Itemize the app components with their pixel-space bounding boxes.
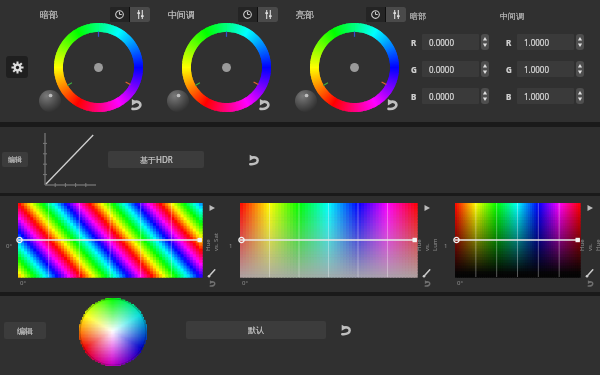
button[interactable]: Reset Hue vs. Hue <box>585 278 596 289</box>
button[interactable]: Color wheel 暗部 <box>54 23 143 112</box>
button[interactable] <box>238 7 278 22</box>
button[interactable]: Expand Hue vs. Sat <box>207 203 217 213</box>
button[interactable]: Undo <box>246 152 262 168</box>
staticText: 0.0000 <box>429 64 455 75</box>
button[interactable]: Stepper G <box>481 61 489 77</box>
button[interactable]: Picker Hue vs. Hue <box>585 268 595 278</box>
staticText: 默认 <box>248 325 264 335</box>
staticText: B <box>506 91 512 102</box>
staticText: 0° <box>457 279 464 287</box>
staticText: Hue vs. Lum <box>415 231 439 251</box>
staticText: 编辑 <box>8 155 22 164</box>
button[interactable]: Stepper B <box>576 88 584 104</box>
staticText: 0° <box>6 242 13 250</box>
staticText: R <box>411 37 417 48</box>
staticText: Hue vs. Sat <box>204 231 220 251</box>
button[interactable]: Stepper G <box>576 61 584 77</box>
button[interactable]: Luma 亮部 <box>295 90 317 112</box>
button[interactable]: Reset Hue vs. Sat <box>207 278 218 289</box>
button[interactable]: Picker Hue vs. Lum <box>422 268 432 278</box>
button[interactable]: Color wheel 中间调 <box>182 23 271 112</box>
staticText: R <box>506 37 512 48</box>
button[interactable]: 0.0000 <box>422 34 479 50</box>
button[interactable]: 编辑 <box>4 322 46 339</box>
staticText: 1.0000 <box>524 37 550 48</box>
staticText: 1 <box>444 242 448 250</box>
button[interactable]: 1.0000 <box>517 88 574 104</box>
button[interactable]: Stepper B <box>481 88 489 104</box>
staticText: G <box>506 64 512 75</box>
button[interactable] <box>110 7 150 22</box>
staticText: Hue vs. Hue <box>578 231 600 251</box>
staticText: 中间调 <box>500 11 524 21</box>
staticText: B <box>411 91 417 102</box>
button[interactable]: Expand Hue vs. Hue <box>585 203 595 213</box>
staticText: 暗部 <box>40 9 58 20</box>
staticText: G <box>411 64 417 75</box>
button[interactable]: Settings <box>6 56 28 78</box>
button[interactable]: Luma 暗部 <box>39 90 61 112</box>
staticText: 中间调 <box>168 9 195 20</box>
staticText: 0.0000 <box>429 37 455 48</box>
button[interactable]: 0.0000 <box>422 88 479 104</box>
staticText: 0° <box>242 279 249 287</box>
staticText: 0° <box>20 279 27 287</box>
button[interactable] <box>366 7 406 22</box>
button[interactable]: Stepper R <box>481 34 489 50</box>
button[interactable]: Expand Hue vs. Lum <box>422 203 432 213</box>
staticText: 1.0000 <box>524 64 550 75</box>
button[interactable]: 1.0000 <box>517 61 574 77</box>
button[interactable]: Undo <box>384 96 401 113</box>
button[interactable]: 1.0000 <box>517 34 574 50</box>
button[interactable]: 默认 <box>186 321 326 339</box>
button[interactable]: Undo <box>128 96 145 113</box>
button[interactable]: Color sphere <box>80 299 146 365</box>
staticText: 亮部 <box>296 9 314 20</box>
staticText: 1 <box>229 242 233 250</box>
button[interactable]: Luma 中间调 <box>167 90 189 112</box>
button[interactable]: Reset Hue vs. Lum <box>422 278 433 289</box>
button[interactable]: Undo <box>338 322 354 338</box>
staticText: 编辑 <box>17 326 33 336</box>
staticText: 暗部 <box>410 11 426 21</box>
button[interactable]: Color wheel 亮部 <box>310 23 399 112</box>
button[interactable]: Stepper R <box>576 34 584 50</box>
staticText: 1.0000 <box>524 91 550 102</box>
staticText: 基于HDR <box>140 154 173 165</box>
button[interactable]: Undo <box>256 96 273 113</box>
staticText: 0.0000 <box>429 91 455 102</box>
button[interactable]: 编辑 <box>2 152 28 167</box>
button[interactable]: 基于HDR <box>108 151 204 168</box>
button[interactable]: 0.0000 <box>422 61 479 77</box>
button[interactable]: Picker Hue vs. Sat <box>207 268 217 278</box>
